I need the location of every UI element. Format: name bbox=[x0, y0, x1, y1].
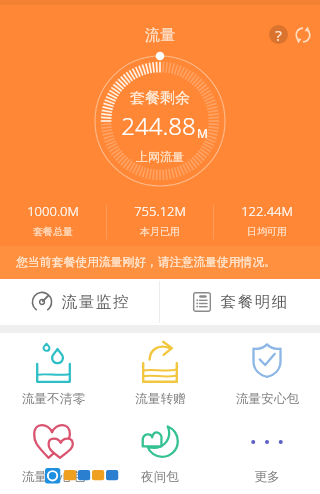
button[interactable] bbox=[107, 331, 214, 415]
staticText: 日均可用 bbox=[247, 225, 287, 238]
staticText: 流量不清零 bbox=[22, 391, 85, 407]
staticText: 更多 bbox=[254, 469, 280, 485]
staticText: 122.44M bbox=[241, 202, 293, 220]
staticText: 流量安心包 bbox=[236, 391, 299, 407]
button[interactable]: 755.12M bbox=[107, 202, 213, 242]
staticText: 流量监控 bbox=[61, 292, 129, 312]
staticText: 夜间包 bbox=[141, 469, 179, 485]
button[interactable] bbox=[213, 426, 320, 493]
button[interactable]: 1000.0M bbox=[0, 202, 106, 242]
staticText: 流量转赠 bbox=[135, 391, 186, 407]
staticText: 套餐明细 bbox=[220, 292, 288, 312]
staticText: 套餐总量 bbox=[33, 225, 73, 238]
staticText: 流量爱心包 bbox=[22, 469, 85, 485]
staticText: 您当前套餐使用流量刚好，请注意流量使用情况。 bbox=[16, 255, 276, 270]
staticText: M bbox=[197, 125, 208, 141]
staticText: 755.12M bbox=[134, 202, 186, 220]
button[interactable] bbox=[0, 333, 107, 415]
button[interactable] bbox=[214, 333, 320, 415]
staticText: 1000.0M bbox=[27, 202, 79, 220]
staticText: 本月已用 bbox=[140, 225, 180, 238]
button[interactable]: 套餐明细 bbox=[160, 279, 320, 325]
staticText: 套餐剩余 bbox=[130, 89, 190, 108]
staticText: 上网流量 bbox=[136, 149, 184, 164]
button[interactable]: Help bbox=[269, 25, 288, 44]
button[interactable] bbox=[0, 413, 107, 493]
staticText: 流量 bbox=[145, 26, 175, 45]
button[interactable]: 流量监控 bbox=[0, 279, 159, 325]
button[interactable] bbox=[107, 414, 214, 493]
button[interactable]: Refresh bbox=[292, 24, 313, 45]
staticText: 244.88 bbox=[121, 109, 196, 142]
staticText: ? bbox=[275, 25, 282, 44]
button[interactable]: 122.44M bbox=[214, 202, 320, 242]
